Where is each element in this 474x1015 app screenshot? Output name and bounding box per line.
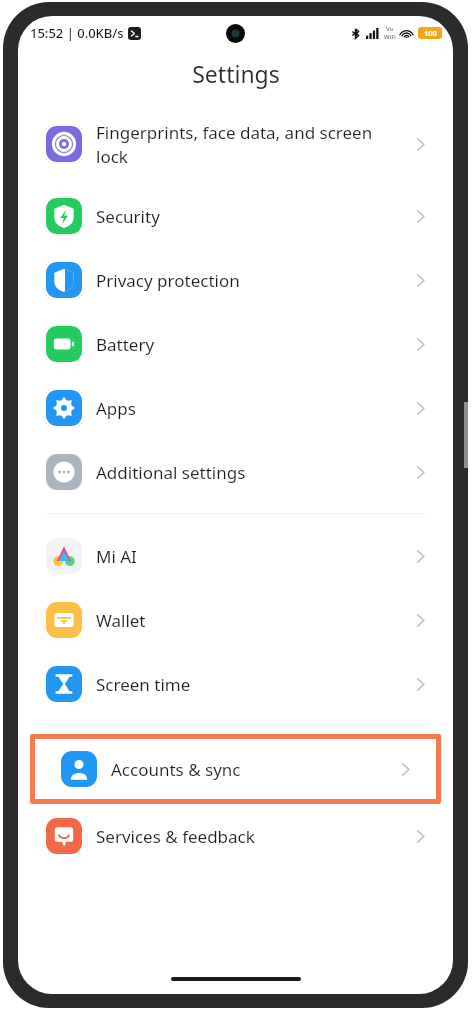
button[interactable]: Accounts & sync — [33, 737, 438, 801]
button[interactable]: Screen time — [18, 652, 453, 716]
staticText: Settings — [192, 58, 280, 89]
staticText: Accounts & sync — [111, 758, 389, 781]
staticText: 100 — [424, 28, 437, 38]
button[interactable]: Services & feedback — [18, 804, 453, 868]
staticText: Services & feedback — [96, 825, 404, 848]
button[interactable]: Privacy protection — [18, 248, 453, 312]
staticText: 15:52 | 0.0KB/s — [30, 24, 124, 42]
button[interactable]: Apps — [18, 376, 453, 440]
button[interactable]: Battery — [18, 312, 453, 376]
staticText: Fingerprints, face data, and screen lock — [96, 121, 404, 168]
button[interactable]: Wallet — [18, 588, 453, 652]
staticText: Apps — [96, 397, 404, 420]
button[interactable]: Mi AI — [18, 524, 453, 588]
button[interactable]: Fingerprints, face data, and screen lock — [18, 104, 453, 184]
staticText: Mi AI — [96, 545, 404, 568]
button[interactable]: Additional settings — [18, 440, 453, 504]
staticText: Additional settings — [96, 461, 404, 484]
staticText: Vo — [386, 25, 394, 33]
staticText: Security — [96, 205, 404, 228]
staticText: Wallet — [96, 609, 404, 632]
button[interactable]: Security — [18, 184, 453, 248]
staticText: WiFi — [384, 33, 396, 41]
staticText: Screen time — [96, 673, 404, 696]
staticText: Battery — [96, 333, 404, 356]
staticText: Privacy protection — [96, 269, 404, 292]
